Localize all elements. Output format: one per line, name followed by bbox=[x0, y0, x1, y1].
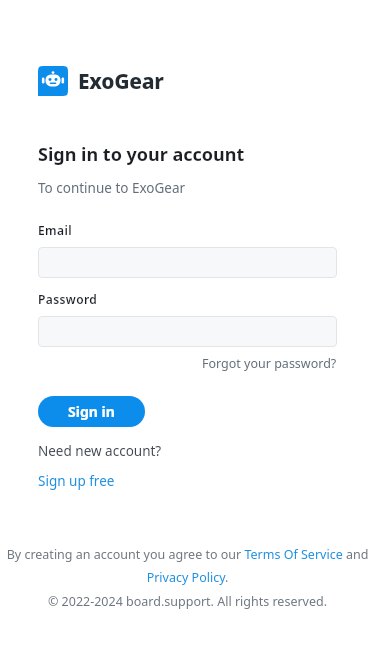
button[interactable]: ExoGear logo bbox=[38, 66, 164, 96]
button[interactable] bbox=[38, 316, 337, 347]
staticText: Email bbox=[38, 222, 73, 238]
button[interactable]: Sign in bbox=[38, 396, 145, 427]
staticText: Need new account? bbox=[38, 442, 162, 460]
button[interactable]: Privacy Policy. bbox=[0, 569, 375, 586]
button[interactable]: Sign up free bbox=[38, 472, 115, 490]
other: ExoGear logo bbox=[38, 66, 68, 96]
staticText: Sign in to your account bbox=[38, 142, 245, 167]
button[interactable]: By creating an account you agree to our … bbox=[0, 546, 375, 563]
staticText: To continue to ExoGear bbox=[38, 179, 186, 197]
staticText: © 2022-2024 board.support. All rights re… bbox=[0, 593, 375, 610]
staticText: Password bbox=[38, 291, 98, 307]
button[interactable]: Forgot your password? bbox=[202, 353, 337, 374]
button[interactable] bbox=[38, 247, 337, 278]
staticText: Sign in bbox=[68, 402, 115, 421]
staticText: ExoGear bbox=[78, 67, 164, 96]
